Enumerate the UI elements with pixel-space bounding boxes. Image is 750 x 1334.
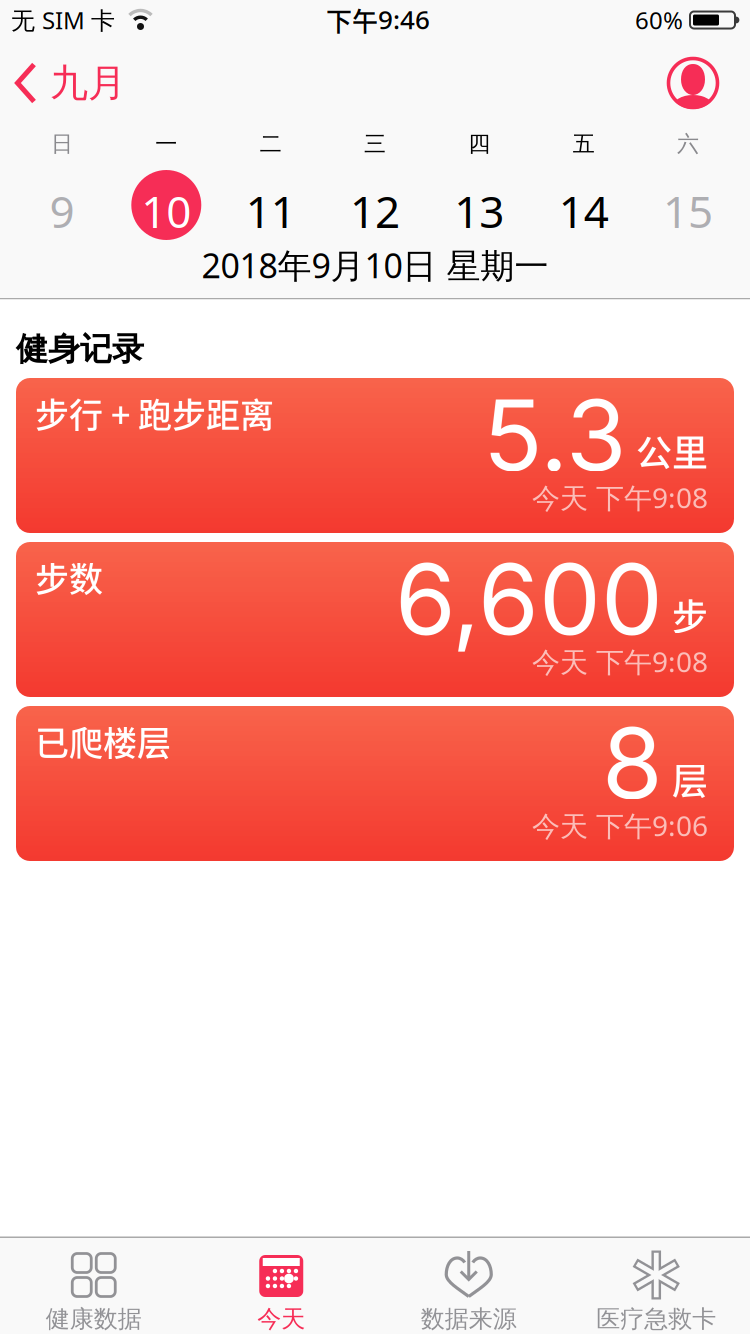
- button[interactable]: 12: [325, 176, 425, 246]
- staticText: 层: [672, 753, 708, 804]
- staticText: 今天: [257, 1304, 305, 1334]
- button[interactable]: 步行 + 跑步距离: [16, 378, 734, 533]
- staticText: 医疗急救卡: [596, 1304, 716, 1334]
- staticText: 公里: [636, 425, 708, 476]
- button[interactable]: 步数: [16, 542, 734, 697]
- staticText: 2018年9月10日 星期一: [201, 242, 548, 288]
- staticText: 步行 + 跑步距离: [35, 389, 274, 437]
- staticText: 健康数据: [46, 1304, 142, 1334]
- staticText: 五: [573, 130, 595, 157]
- staticText: 15: [663, 182, 713, 240]
- staticText: 12: [350, 182, 400, 240]
- button[interactable]: 健康数据: [0, 1238, 187, 1334]
- staticText: 今天 下午9:06: [532, 807, 708, 844]
- button[interactable]: 九月: [14, 60, 126, 106]
- staticText: 三: [364, 130, 386, 157]
- staticText: 一: [155, 130, 177, 157]
- button[interactable]: 10: [116, 176, 216, 246]
- staticText: 已爬楼层: [35, 717, 171, 765]
- staticText: 14: [559, 182, 609, 240]
- staticText: 健身记录: [16, 329, 144, 369]
- button[interactable]: 9: [12, 176, 112, 246]
- button[interactable]: 11: [221, 176, 321, 246]
- staticText: 8: [602, 705, 663, 821]
- staticText: 今天 下午9:08: [532, 643, 708, 680]
- staticText: 13: [454, 182, 504, 240]
- staticText: 步: [672, 589, 708, 640]
- staticText: 无 SIM 卡: [11, 4, 115, 36]
- button[interactable]: 13: [429, 176, 529, 246]
- staticText: 数据来源: [421, 1304, 517, 1334]
- staticText: 10: [141, 182, 191, 240]
- staticText: 日: [51, 130, 73, 157]
- staticText: 九月: [50, 60, 126, 106]
- button[interactable]: 14: [534, 176, 634, 246]
- staticText: 5.3: [483, 377, 627, 493]
- staticText: 9: [49, 182, 74, 240]
- button[interactable]: 今天: [187, 1238, 375, 1334]
- staticText: 下午9:46: [326, 2, 430, 38]
- button[interactable]: 个人资料: [667, 57, 719, 109]
- staticText: 6,600: [395, 541, 663, 657]
- staticText: 六: [677, 130, 699, 157]
- button[interactable]: 医疗急救卡: [562, 1238, 750, 1334]
- button[interactable]: 15: [638, 176, 738, 246]
- staticText: 11: [246, 182, 296, 240]
- staticText: 今天 下午9:08: [532, 479, 708, 516]
- staticText: 四: [468, 130, 490, 157]
- staticText: 60%: [635, 4, 683, 36]
- staticText: 二: [260, 130, 282, 157]
- button[interactable]: 数据来源: [375, 1238, 562, 1334]
- staticText: 步数: [35, 553, 103, 601]
- button[interactable]: 已爬楼层: [16, 706, 734, 861]
